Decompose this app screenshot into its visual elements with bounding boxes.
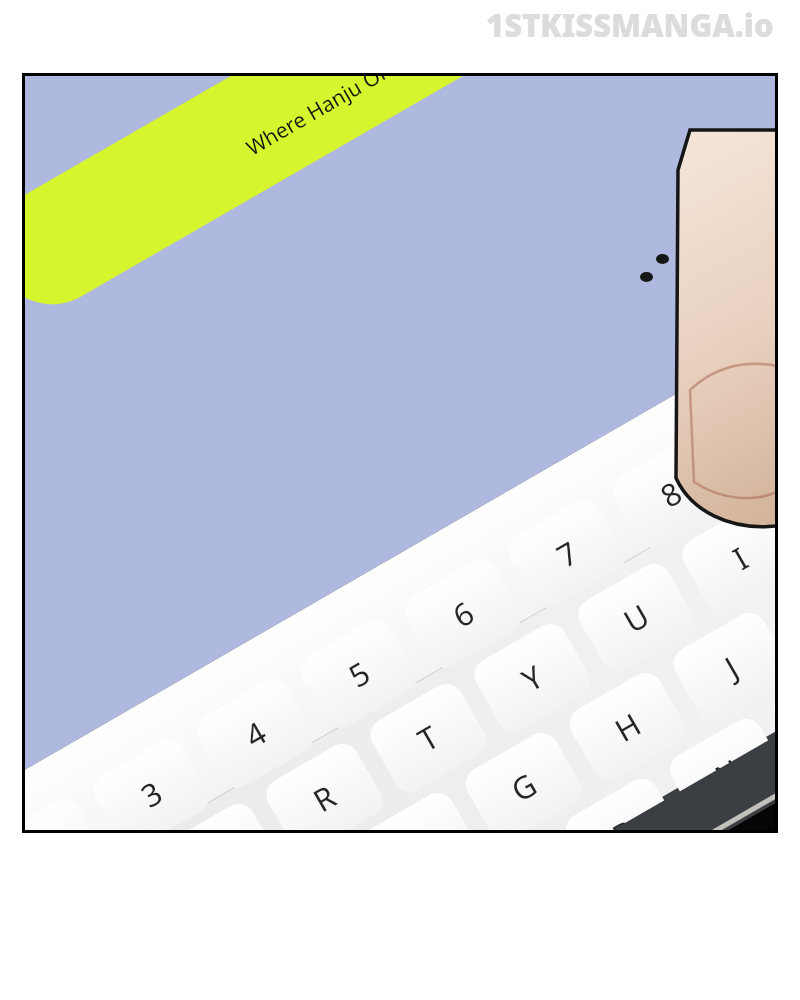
button[interactable]: Comic panel showing a phone message scre… [0, 0, 800, 1000]
